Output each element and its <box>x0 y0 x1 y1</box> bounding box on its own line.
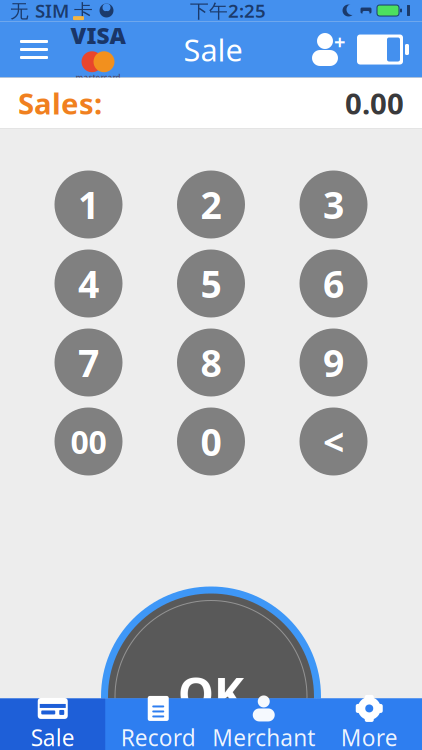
button[interactable]: Menu <box>6 21 62 77</box>
staticText: 8 <box>200 338 221 387</box>
staticText: Sale <box>183 29 242 70</box>
button[interactable]: Backspace <box>299 407 367 475</box>
button[interactable]: 9 <box>299 328 367 396</box>
staticText: Record <box>121 722 196 750</box>
button[interactable]: 3 <box>299 170 367 238</box>
staticText: 无 SIM 卡 <box>10 0 93 23</box>
staticText: < <box>323 417 344 466</box>
button[interactable]: 00 <box>54 407 122 475</box>
button[interactable]: 5 <box>177 249 245 317</box>
staticText: OK <box>178 662 244 723</box>
staticText: + <box>334 28 345 55</box>
button[interactable]: Add customer <box>300 21 350 77</box>
staticText: 2 <box>200 180 221 229</box>
staticText: 0.00 <box>345 83 404 122</box>
staticText: 3 <box>323 180 344 229</box>
staticText: 6 <box>323 259 344 308</box>
staticText: 00 <box>70 420 106 463</box>
staticText: 5 <box>200 259 221 308</box>
button[interactable]: Merchant <box>211 698 316 750</box>
staticText: 4 <box>78 259 99 308</box>
staticText: 1 <box>78 180 99 229</box>
staticText: More <box>341 722 398 750</box>
button[interactable]: OK <box>101 586 321 750</box>
staticText: Merchant <box>212 722 315 750</box>
button[interactable]: 6 <box>299 249 367 317</box>
staticText: mastercard <box>75 72 120 83</box>
button[interactable]: More <box>316 698 422 750</box>
button[interactable]: 4 <box>54 249 122 317</box>
button[interactable]: 8 <box>177 328 245 396</box>
staticText: Sale <box>31 722 75 750</box>
button[interactable]: Device battery <box>350 21 416 77</box>
button[interactable]: Record <box>105 698 211 750</box>
button[interactable]: 0 <box>177 407 245 475</box>
staticText: VISA <box>70 20 125 50</box>
staticText: 下午2:25 <box>190 0 266 23</box>
staticText: Sales: <box>18 83 102 122</box>
button[interactable]: 1 <box>54 170 122 238</box>
button[interactable]: Sale <box>0 698 105 750</box>
staticText: 9 <box>323 338 344 387</box>
staticText: 7 <box>78 338 99 387</box>
button[interactable]: 7 <box>54 328 122 396</box>
button[interactable]: 2 <box>177 170 245 238</box>
staticText: 0 <box>200 417 221 466</box>
